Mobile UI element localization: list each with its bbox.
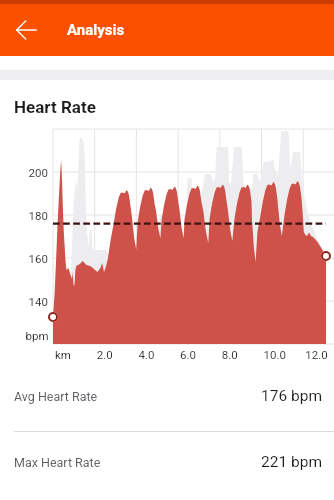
- staticText: Avg Heart Rate: [14, 389, 98, 404]
- staticText: Analysis: [67, 21, 125, 39]
- staticText: Heart Rate: [14, 97, 96, 117]
- staticText: 176 bpm: [261, 387, 322, 405]
- button[interactable]: Avg Heart Rate: [0, 374, 334, 418]
- button[interactable]: Max Heart Rate: [0, 440, 334, 484]
- staticText: 221 bpm: [261, 453, 322, 471]
- staticText: Max Heart Rate: [14, 455, 101, 470]
- button[interactable]: Back: [6, 4, 47, 56]
